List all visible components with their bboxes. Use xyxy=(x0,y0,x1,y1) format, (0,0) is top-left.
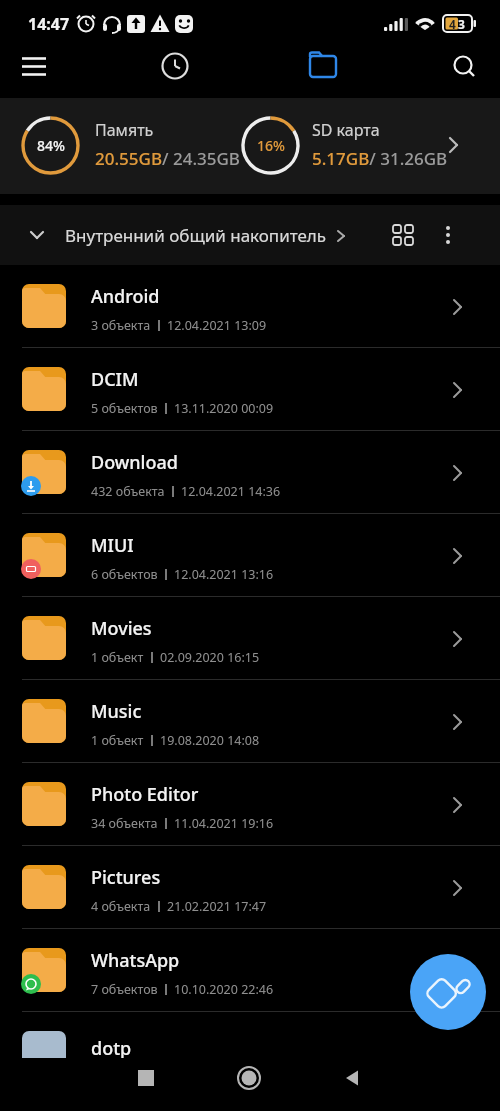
staticText: 1 объект xyxy=(91,732,144,749)
staticText: DCIM xyxy=(91,367,139,392)
staticText: 6 объектов xyxy=(91,566,158,583)
staticText: 5 объектов xyxy=(91,400,158,417)
button[interactable]: MIUI xyxy=(0,514,500,597)
staticText: 432 объекта xyxy=(91,483,165,500)
button[interactable] xyxy=(303,46,343,88)
staticText: 3 объекта xyxy=(91,317,151,334)
button[interactable]: Movies xyxy=(0,597,500,680)
staticText: Movies xyxy=(91,616,152,641)
button[interactable]: Music xyxy=(0,680,500,763)
staticText: Android xyxy=(91,284,160,309)
staticText: 16% xyxy=(257,136,285,155)
staticText: MIUI xyxy=(91,533,134,558)
staticText: 13.11.2020 00:09 xyxy=(174,400,274,417)
button[interactable] xyxy=(22,220,52,250)
staticText: 12.04.2021 13:16 xyxy=(174,566,274,583)
staticText: 10.10.2020 22:46 xyxy=(174,981,274,998)
button[interactable] xyxy=(383,215,423,255)
staticText: 12.04.2021 13:09 xyxy=(167,317,267,334)
button[interactable] xyxy=(10,54,54,86)
button[interactable] xyxy=(155,46,195,88)
staticText: Pictures xyxy=(91,865,161,890)
staticText: 34 объекта xyxy=(91,815,158,832)
button[interactable]: 84% xyxy=(0,98,500,194)
staticText: 19.08.2020 14:08 xyxy=(160,732,260,749)
button[interactable]: Download xyxy=(0,431,500,514)
staticText: 12.04.2021 14:36 xyxy=(181,483,281,500)
button[interactable] xyxy=(326,1058,378,1098)
button[interactable] xyxy=(444,46,486,88)
staticText: 1 объект xyxy=(91,649,144,666)
button[interactable]: DCIM xyxy=(0,348,500,431)
staticText: 84% xyxy=(37,136,65,155)
staticText: 3 xyxy=(458,16,465,32)
staticText: 20.55GB/ 24.35GB xyxy=(95,147,240,170)
staticText: SD карта xyxy=(312,119,380,141)
button[interactable]: Android xyxy=(0,265,500,348)
button[interactable] xyxy=(120,1058,172,1098)
staticText: WhatsApp xyxy=(91,948,180,973)
staticText: Download xyxy=(91,450,178,475)
button[interactable]: dotp xyxy=(0,1012,500,1057)
staticText: Photo Editor xyxy=(91,782,199,807)
staticText: 21.02.2021 17:47 xyxy=(167,898,267,915)
staticText: 5.17GB/ 31.26GB xyxy=(312,147,448,170)
staticText: 4 xyxy=(449,16,456,32)
button[interactable] xyxy=(410,954,486,1030)
staticText: dotp xyxy=(91,1036,132,1061)
button[interactable] xyxy=(429,216,467,254)
staticText: Память xyxy=(95,119,154,141)
staticText: Внутренний общий накопитель xyxy=(65,224,327,247)
staticText: 7 объектов xyxy=(91,981,158,998)
staticText: 14:47 xyxy=(28,13,70,35)
button[interactable]: Photo Editor xyxy=(0,763,500,846)
staticText: 4 объекта xyxy=(91,898,151,915)
button[interactable]: WhatsApp xyxy=(0,929,500,1012)
staticText: 02.09.2020 16:15 xyxy=(160,649,260,666)
button[interactable] xyxy=(223,1058,275,1098)
staticText: Music xyxy=(91,699,142,724)
button[interactable]: Внутренний общий накопитель xyxy=(65,224,349,247)
button[interactable]: Pictures xyxy=(0,846,500,929)
staticText: 11.04.2021 19:16 xyxy=(174,815,274,832)
